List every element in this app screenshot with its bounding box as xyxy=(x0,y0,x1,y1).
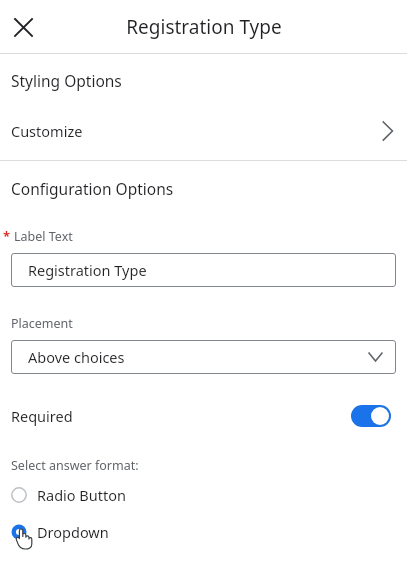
button[interactable]: Required xyxy=(0,397,407,435)
staticText: Styling Options xyxy=(11,70,122,91)
button[interactable]: Dropdown xyxy=(0,520,407,544)
button[interactable]: Registration Type xyxy=(11,253,396,287)
staticText: Registration Type xyxy=(126,14,282,40)
button[interactable]: Above choices xyxy=(11,340,396,374)
staticText: Radio Button xyxy=(37,485,126,505)
staticText: Placement xyxy=(11,315,73,332)
staticText: Customize xyxy=(11,121,83,141)
button[interactable]: Radio Button xyxy=(0,483,407,507)
staticText: Dropdown xyxy=(37,522,109,542)
staticText: Configuration Options xyxy=(11,178,174,199)
staticText: Required xyxy=(11,406,73,426)
staticText: Select answer format: xyxy=(11,457,139,474)
button[interactable]: Close xyxy=(5,9,41,45)
staticText: Registration Type xyxy=(28,260,147,280)
staticText: * xyxy=(3,227,11,245)
button[interactable]: Customize xyxy=(0,112,407,150)
staticText: Above choices xyxy=(28,347,125,367)
staticText: Label Text xyxy=(14,228,73,245)
